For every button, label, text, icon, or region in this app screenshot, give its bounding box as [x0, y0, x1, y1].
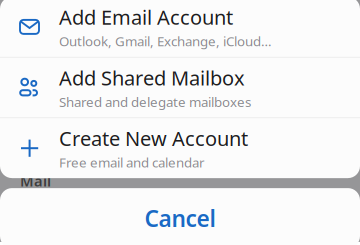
staticText: Outlook, Gmail, Exchange, iCloud… — [59, 32, 272, 50]
staticText: Create New Account — [59, 125, 248, 152]
staticText: Add Shared Mailbox — [59, 64, 245, 91]
button[interactable]: Add Email Account — [0, 0, 360, 57]
button[interactable]: Add Shared Mailbox — [0, 57, 360, 117]
staticText: Mail — [20, 171, 51, 191]
staticText: Add Email Account — [59, 4, 233, 30]
staticText: Shared and delegate mailboxes — [59, 93, 251, 111]
staticText: Cancel — [144, 203, 215, 233]
staticText: Free email and calendar — [59, 153, 205, 171]
button[interactable]: Create New Account — [0, 118, 360, 178]
button[interactable]: Cancel — [0, 188, 360, 245]
